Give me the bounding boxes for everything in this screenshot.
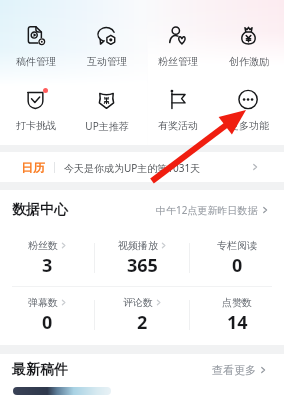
button[interactable]: 中午12点更新昨日数据 bbox=[156, 203, 269, 217]
button[interactable]: 打卡挑战 bbox=[0, 89, 71, 132]
staticText: 2 bbox=[137, 310, 148, 335]
staticText: 今天是你成为UP主的第1031天 bbox=[64, 161, 201, 175]
button[interactable]: 评论数 bbox=[95, 287, 189, 343]
button[interactable]: 弹幕数 bbox=[0, 287, 94, 343]
button[interactable] bbox=[13, 387, 111, 395]
staticText: 互动管理 bbox=[87, 55, 127, 68]
staticText: 视频播放 bbox=[118, 239, 158, 252]
staticText: 点赞数 bbox=[222, 296, 252, 309]
button[interactable]: 专栏阅读 bbox=[190, 230, 284, 286]
staticText: 创作激励 bbox=[229, 55, 269, 68]
staticText: 数据中心 bbox=[12, 201, 68, 219]
staticText: 14 bbox=[227, 310, 248, 335]
button[interactable]: 查看更多 bbox=[212, 363, 267, 377]
button[interactable]: 有奖活动 bbox=[142, 89, 213, 132]
button[interactable]: UP主推荐 bbox=[71, 89, 142, 133]
staticText: 更多功能 bbox=[229, 119, 269, 132]
button[interactable]: 互动管理 bbox=[71, 25, 142, 68]
button[interactable]: 粉丝管理 bbox=[142, 25, 213, 68]
staticText: 打卡挑战 bbox=[16, 119, 56, 132]
staticText: 日历 bbox=[21, 160, 45, 175]
button[interactable]: 视频播放 bbox=[95, 230, 189, 286]
staticText: 专栏阅读 bbox=[217, 239, 257, 252]
staticText: 有奖活动 bbox=[158, 119, 198, 132]
staticText: 弹幕数 bbox=[28, 296, 58, 309]
staticText: 最新稿件 bbox=[12, 361, 68, 379]
staticText: 粉丝管理 bbox=[158, 55, 198, 68]
staticText: 0 bbox=[232, 253, 243, 278]
button[interactable]: 粉丝数 bbox=[0, 230, 94, 286]
button[interactable]: 日历 bbox=[0, 152, 284, 182]
staticText: 365 bbox=[127, 253, 158, 278]
staticText: UP主推荐 bbox=[85, 119, 129, 133]
button[interactable]: 稿件管理 bbox=[0, 25, 71, 68]
button[interactable]: 更多功能 bbox=[213, 89, 284, 132]
staticText: 查看更多 bbox=[212, 363, 256, 377]
staticText: 0 bbox=[42, 310, 53, 335]
staticText: 粉丝数 bbox=[28, 239, 58, 252]
staticText: 中午12点更新昨日数据 bbox=[156, 203, 258, 217]
staticText: 3 bbox=[42, 253, 53, 278]
staticText: 稿件管理 bbox=[16, 55, 56, 68]
button[interactable]: 创作激励 bbox=[213, 25, 284, 68]
button[interactable]: 点赞数 bbox=[190, 287, 284, 343]
staticText: 评论数 bbox=[123, 296, 153, 309]
